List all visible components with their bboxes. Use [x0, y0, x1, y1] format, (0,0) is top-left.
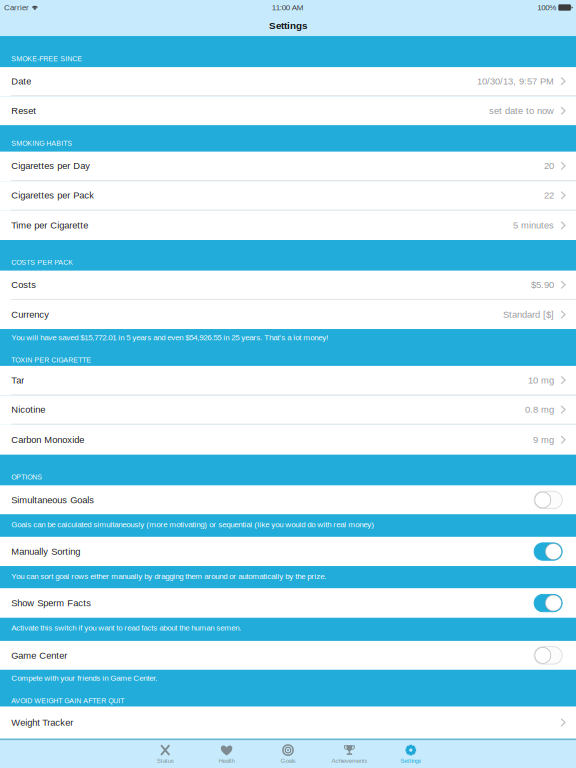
staticText: 20 — [544, 161, 554, 171]
button[interactable]: Date — [0, 67, 576, 96]
button[interactable]: Achievements — [319, 745, 380, 768]
staticText: Settings — [269, 20, 307, 31]
button[interactable]: Nicotine — [0, 395, 576, 425]
staticText: 11:00 AM — [272, 3, 304, 12]
staticText: 22 — [544, 190, 554, 200]
staticText: Health — [219, 757, 235, 764]
button[interactable]: Settings — [380, 745, 441, 768]
button[interactable]: Cigarettes per Day — [0, 152, 576, 181]
staticText: 9 mg — [533, 434, 554, 445]
staticText: 0.8 mg — [525, 404, 554, 415]
staticText: Goals can be calculated simultaneously (… — [11, 520, 374, 529]
staticText: Nicotine — [11, 404, 45, 415]
staticText: Carrier — [4, 3, 29, 12]
staticText: Game Center — [11, 650, 67, 661]
button[interactable]: Reset — [0, 96, 576, 125]
button[interactable]: Tar — [0, 366, 576, 395]
staticText: Achievements — [331, 757, 367, 764]
button[interactable]: Show Sperm Facts — [0, 588, 576, 618]
staticText: Date — [11, 76, 31, 86]
staticText: Manually Sorting — [11, 546, 80, 557]
staticText: 10/30/13, 9:57 PM — [477, 76, 554, 86]
staticText: Carbon Monoxide — [11, 434, 84, 445]
staticText: 100% — [537, 3, 556, 12]
staticText: Cigarettes per Day — [11, 161, 90, 171]
staticText: Time per Cigarette — [11, 220, 88, 230]
button[interactable]: Goals — [257, 745, 319, 768]
button[interactable]: Manually Sorting — [0, 537, 576, 566]
staticText: Settings — [400, 757, 421, 764]
button[interactable]: Game Center — [0, 641, 576, 670]
staticText: Status — [157, 757, 174, 764]
staticText: Simultaneous Goals — [11, 495, 94, 505]
staticText: set date to now — [489, 106, 554, 116]
staticText: Compete with your friends in Game Center… — [11, 673, 157, 682]
staticText: OPTIONS — [11, 473, 42, 481]
staticText: 10 mg — [528, 375, 554, 385]
staticText: Cigarettes per Pack — [11, 190, 94, 200]
staticText: $5.90 — [531, 279, 554, 290]
staticText: Standard [$] — [503, 309, 554, 320]
staticText: Reset — [11, 106, 36, 116]
staticText: Goals — [280, 757, 295, 764]
staticText: Weight Tracker — [11, 717, 73, 728]
staticText: 5 minutes — [513, 220, 554, 230]
staticText: Activate this switch if you want to read… — [11, 623, 241, 632]
staticText: Show Sperm Facts — [11, 598, 91, 608]
staticText: SMOKING HABITS — [11, 139, 72, 147]
staticText: Tar — [11, 375, 24, 385]
button[interactable]: Time per Cigarette — [0, 211, 576, 240]
button[interactable]: Weight Tracker — [0, 706, 576, 739]
staticText: Currency — [11, 309, 49, 320]
button[interactable]: Carbon Monoxide — [0, 425, 576, 455]
staticText: You can sort goal rows either manually b… — [11, 572, 326, 581]
button[interactable]: Simultaneous Goals — [0, 485, 576, 515]
staticText: SMOKE-FREE SINCE — [11, 55, 82, 63]
button[interactable]: Costs — [0, 271, 576, 300]
staticText: AVOID WEIGHT GAIN AFTER QUIT — [11, 697, 124, 705]
staticText: You will have saved $15,772.01 in 5 year… — [11, 333, 328, 342]
button[interactable]: Currency — [0, 300, 576, 329]
staticText: COSTS PER PACK — [11, 258, 73, 266]
button[interactable]: Cigarettes per Pack — [0, 181, 576, 211]
button[interactable]: Health — [196, 745, 257, 768]
staticText: TOXIN PER CIGARETTE — [11, 356, 91, 364]
staticText: Costs — [11, 279, 36, 290]
button[interactable]: Status — [134, 745, 196, 768]
